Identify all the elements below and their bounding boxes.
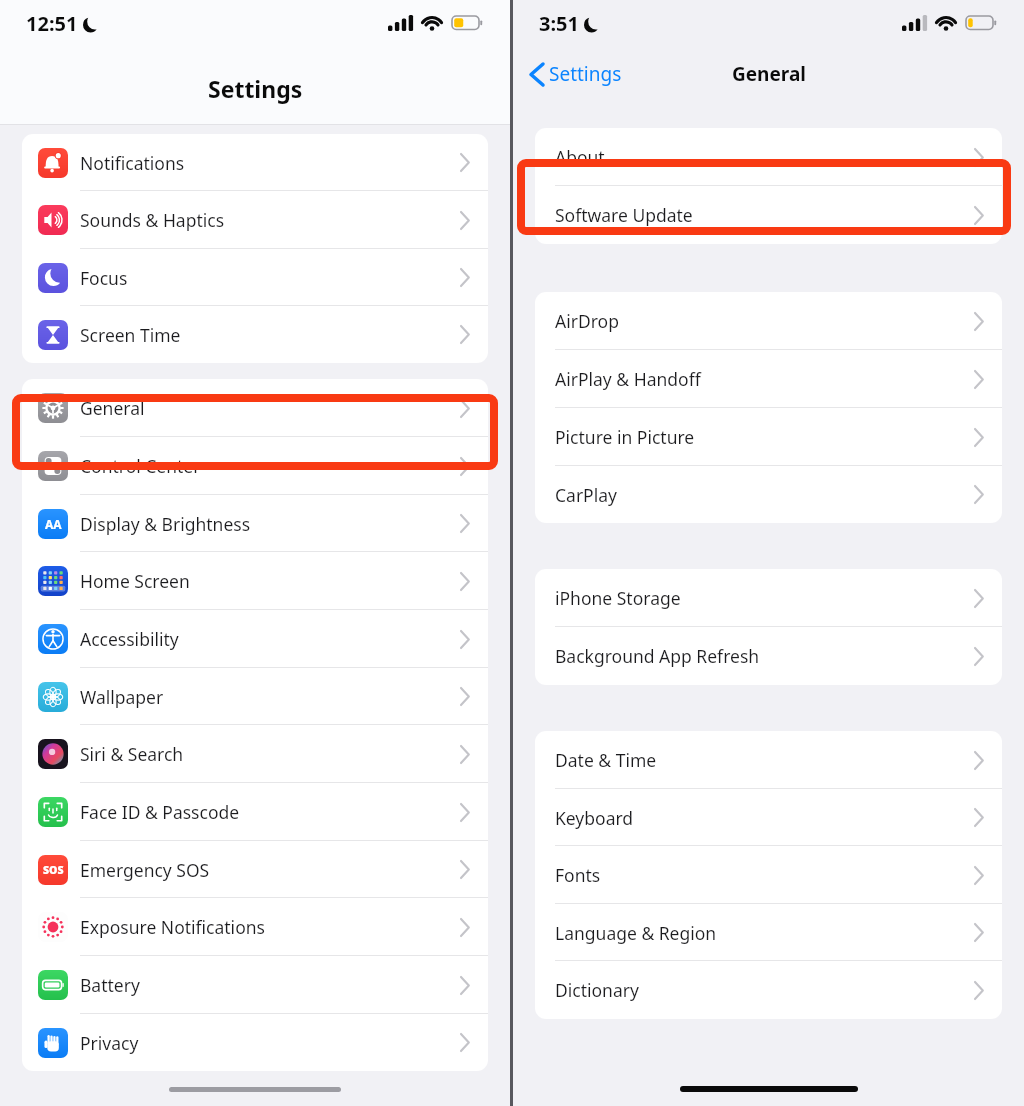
- button[interactable]: AirPlay & Handoff: [535, 350, 1002, 408]
- button[interactable]: Home Screen: [22, 552, 488, 610]
- staticText: 12:51: [26, 10, 78, 37]
- staticText: 3:51: [539, 10, 579, 37]
- staticText: Accessibility: [80, 627, 461, 651]
- staticText: Date & Time: [555, 748, 975, 772]
- staticText: CarPlay: [555, 483, 975, 507]
- button[interactable]: iPhone Storage: [535, 569, 1002, 627]
- staticText: AirPlay & Handoff: [555, 367, 975, 391]
- staticText: Notifications: [80, 151, 461, 175]
- button[interactable]: Keyboard: [535, 789, 1002, 846]
- staticText: Settings: [549, 61, 622, 87]
- staticText: General: [80, 396, 461, 420]
- button[interactable]: Battery: [22, 956, 488, 1014]
- staticText: About: [555, 145, 975, 169]
- staticText: AirDrop: [555, 309, 975, 333]
- staticText: Language & Region: [555, 921, 975, 945]
- staticText: iPhone Storage: [555, 586, 975, 610]
- button[interactable]: Screen Time: [22, 306, 488, 363]
- staticText: Privacy: [80, 1031, 461, 1055]
- staticText: Exposure Notifications: [80, 915, 461, 939]
- button[interactable]: Language & Region: [535, 904, 1002, 961]
- staticText: Battery: [80, 973, 461, 997]
- staticText: Keyboard: [555, 806, 975, 830]
- staticText: Dictionary: [555, 978, 975, 1002]
- staticText: AA: [45, 516, 62, 532]
- button[interactable]: Dictionary: [535, 961, 1002, 1019]
- button[interactable]: Wallpaper: [22, 668, 488, 725]
- staticText: Wallpaper: [80, 685, 461, 709]
- staticText: Display & Brightness: [80, 512, 461, 536]
- button[interactable]: Control Center: [22, 437, 488, 495]
- staticText: Fonts: [555, 863, 975, 887]
- button[interactable]: Siri & Search: [22, 725, 488, 783]
- staticText: Picture in Picture: [555, 425, 975, 449]
- button[interactable]: CarPlay: [535, 466, 1002, 523]
- button[interactable]: Focus: [22, 249, 488, 306]
- button[interactable]: Privacy: [22, 1014, 488, 1071]
- button[interactable]: Fonts: [535, 846, 1002, 904]
- button[interactable]: General: [22, 379, 488, 437]
- button[interactable]: Picture in Picture: [535, 408, 1002, 466]
- button[interactable]: Sounds & Haptics: [22, 191, 488, 249]
- button[interactable]: Exposure Notifications: [22, 898, 488, 956]
- staticText: Focus: [80, 266, 461, 290]
- button[interactable]: Notifications: [22, 134, 488, 191]
- staticText: Software Update: [555, 203, 975, 227]
- staticText: Face ID & Passcode: [80, 800, 461, 824]
- staticText: General: [732, 61, 806, 87]
- button[interactable]: Date & Time: [535, 731, 1002, 789]
- button[interactable]: Back to Settings: [525, 55, 628, 93]
- staticText: Emergency SOS: [80, 858, 461, 882]
- button[interactable]: Background App Refresh: [535, 627, 1002, 685]
- staticText: Settings: [208, 73, 303, 104]
- button[interactable]: SOS: [22, 841, 488, 898]
- button[interactable]: Face ID & Passcode: [22, 783, 488, 841]
- button[interactable]: AA: [22, 495, 488, 552]
- staticText: Home Screen: [80, 569, 461, 593]
- staticText: Background App Refresh: [555, 644, 975, 668]
- staticText: Siri & Search: [80, 742, 461, 766]
- staticText: Screen Time: [80, 323, 461, 347]
- button[interactable]: Software Update: [535, 186, 1002, 244]
- staticText: Sounds & Haptics: [80, 208, 461, 232]
- staticText: Control Center: [80, 454, 461, 478]
- button[interactable]: About: [535, 128, 1002, 186]
- button[interactable]: AirDrop: [535, 292, 1002, 350]
- button[interactable]: Accessibility: [22, 610, 488, 668]
- staticText: SOS: [43, 863, 64, 877]
